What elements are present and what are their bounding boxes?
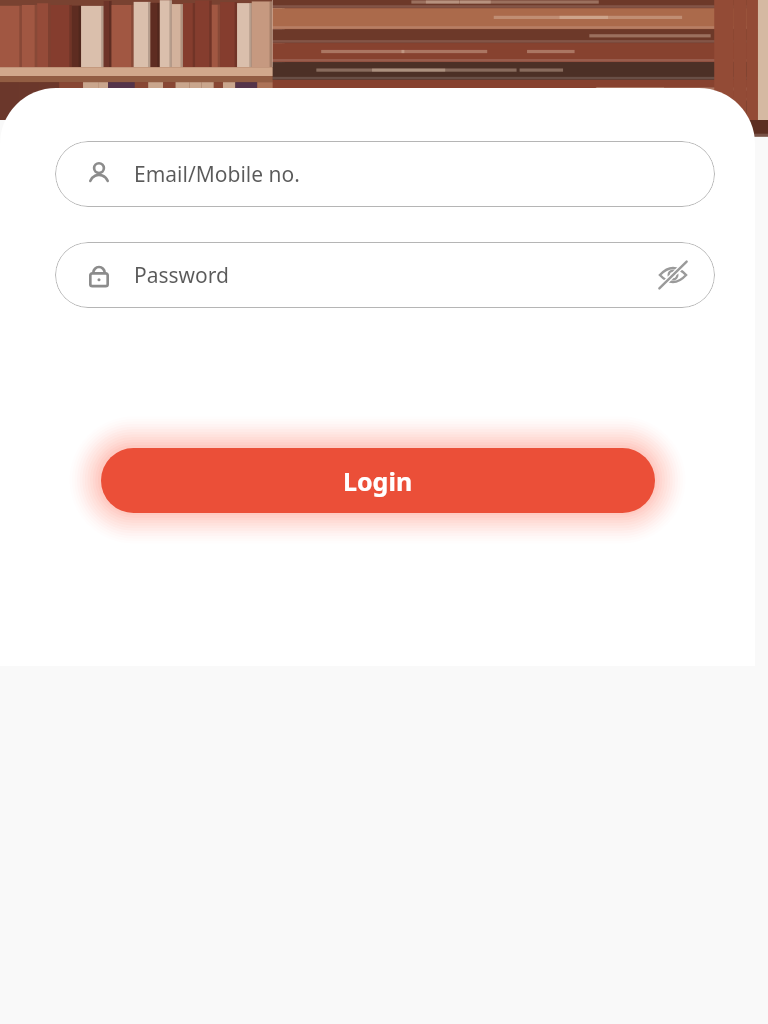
staticText: Login: [343, 464, 413, 498]
button[interactable]: Email/Mobile no.: [55, 141, 715, 207]
staticText: Email/Mobile no.: [134, 160, 300, 189]
button[interactable]: Password: [55, 242, 715, 308]
button[interactable]: Show password: [651, 253, 695, 297]
button[interactable]: Login: [101, 448, 655, 513]
staticText: Password: [134, 261, 651, 290]
